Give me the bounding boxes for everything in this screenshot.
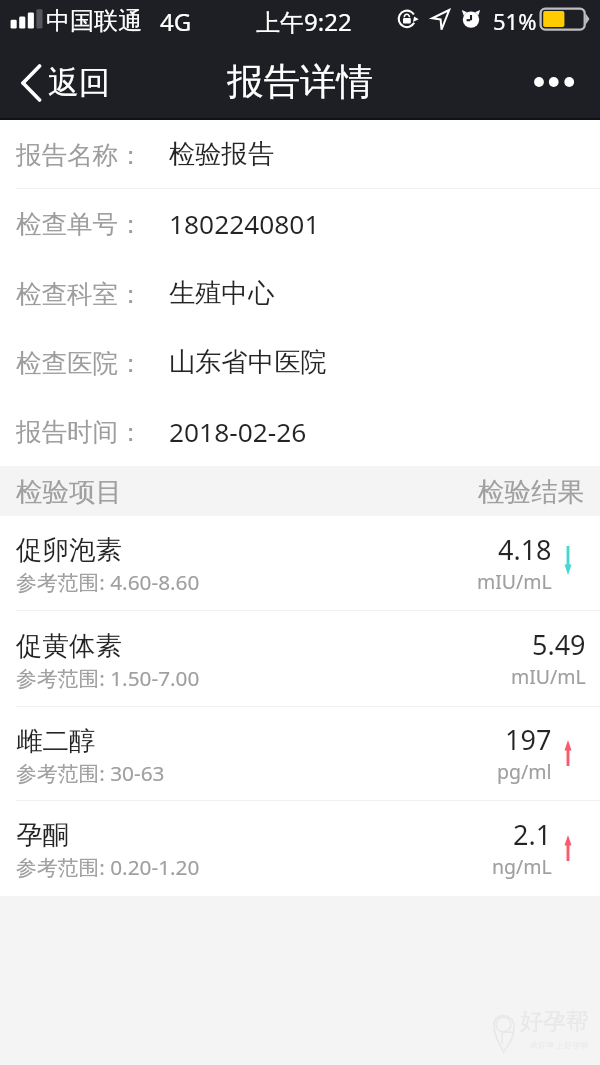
staticText: mIU/mL [477,568,552,595]
staticText: 检验结果 [478,475,584,508]
staticText: 生殖中心 [169,277,275,310]
staticText: 4G [160,5,192,38]
staticText: 检查单号： [16,208,144,240]
staticText: 检查科室： [16,278,144,310]
staticText: 好孕帮 [520,1007,589,1036]
other: Alarm [461,7,482,31]
staticText: 参考范围: 30-63 [16,759,165,787]
staticText: 检验项目 [16,475,122,508]
staticText: 检验报告 [169,138,275,171]
staticText: mIU/mL [511,663,586,690]
staticText: 197 [505,721,552,758]
staticText: 2018-02-26 [169,414,307,450]
other: Location [430,7,452,32]
staticText: 孕酮 [16,818,69,851]
staticText: 中国联通 [46,6,142,36]
staticText: 上午9:22 [256,5,352,38]
button[interactable]: 促卵泡素 [0,516,600,611]
staticText: 检查医院： [16,347,144,379]
button[interactable]: 雌二醇 [0,707,600,801]
staticText: 51% [493,6,537,36]
staticText: 报告名称： [16,139,144,171]
button[interactable]: 促黄体素 [0,611,600,707]
other: Rotation lock [394,7,420,31]
staticText: 雌二醇 [16,724,96,757]
other: Battery 51 percent [539,6,591,32]
staticText: ng/mL [492,853,552,880]
other: Back [21,64,43,102]
staticText: 参考范围: 4.60-8.60 [16,568,200,596]
staticText: 2.1 [513,816,552,853]
staticText: 求好孕 上好孕帮 [530,1039,589,1050]
button[interactable]: 孕酮 [0,801,600,896]
staticText: 报告时间： [16,416,144,448]
button[interactable]: More options [528,62,584,102]
other: Signal strength [10,8,43,30]
staticText: 参考范围: 0.20-1.20 [16,853,200,881]
staticText: pg/ml [497,758,552,785]
staticText: 返回 [48,63,110,102]
button[interactable]: Back [21,63,110,102]
staticText: 4.18 [498,531,552,568]
staticText: 参考范围: 1.50-7.00 [16,664,200,692]
staticText: 促卵泡素 [16,533,122,566]
staticText: 1802240801 [169,206,320,242]
staticText: 报告详情 [227,59,373,105]
staticText: 促黄体素 [16,629,122,662]
staticText: 5.49 [532,626,586,663]
staticText: 山东省中医院 [169,346,327,379]
